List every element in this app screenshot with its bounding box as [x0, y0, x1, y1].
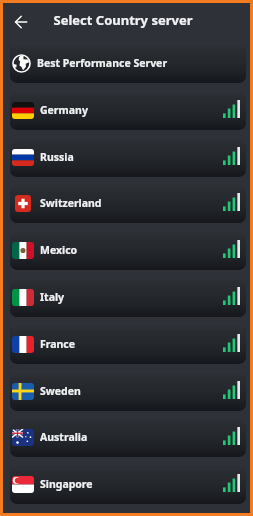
button[interactable]: Mexico — [10, 230, 246, 270]
button[interactable]: Italy — [10, 277, 246, 317]
button[interactable]: Switzerland — [10, 183, 246, 223]
button[interactable]: France — [10, 324, 246, 364]
button[interactable]: Back — [10, 11, 32, 33]
button[interactable]: Germany — [10, 90, 246, 130]
staticText: France — [40, 337, 76, 351]
staticText: Italy — [40, 290, 65, 304]
button[interactable]: Best Performance Server — [10, 43, 246, 83]
button[interactable]: Sweden — [10, 371, 246, 411]
staticText: Sweden — [40, 384, 81, 398]
staticText: Best Performance Server — [37, 56, 168, 70]
staticText: Russia — [40, 150, 74, 164]
button[interactable]: Singapore — [10, 464, 246, 504]
staticText: Australia — [40, 430, 88, 444]
staticText: Germany — [40, 103, 88, 117]
staticText: Select Country server — [53, 11, 193, 29]
staticText: Singapore — [40, 477, 93, 491]
staticText: Mexico — [40, 243, 78, 257]
button[interactable]: Australia — [10, 417, 246, 457]
staticText: Switzerland — [40, 196, 102, 210]
button[interactable]: Russia — [10, 137, 246, 177]
